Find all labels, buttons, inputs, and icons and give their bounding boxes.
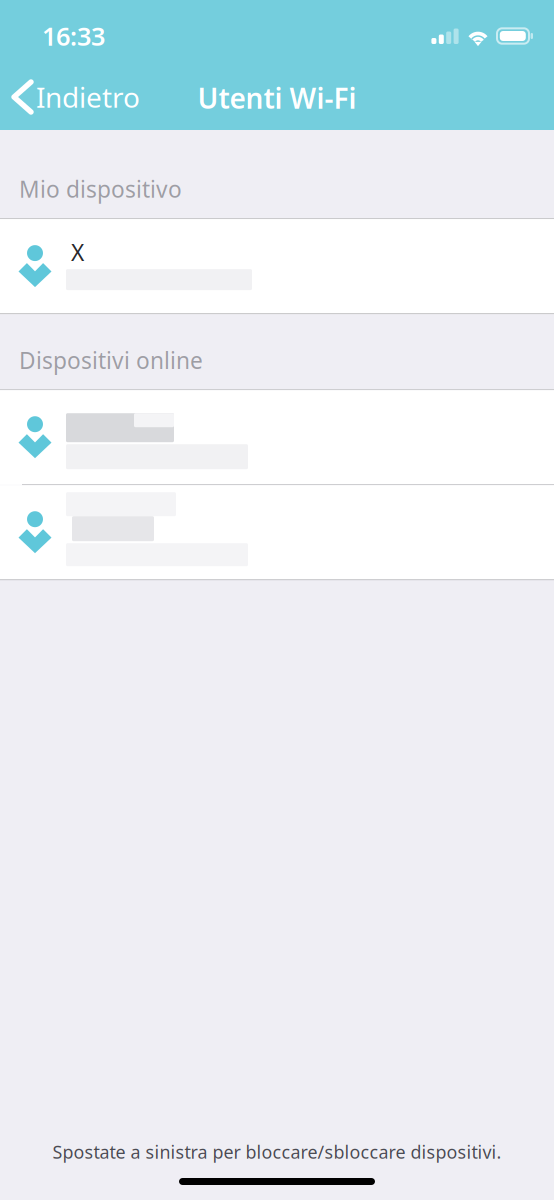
staticText: Spostate a sinistra per bloccare/sblocca… bbox=[52, 1140, 501, 1164]
staticText: Dispositivi online bbox=[19, 345, 203, 375]
button[interactable]: Indietro bbox=[0, 58, 152, 130]
staticText: Indietro bbox=[36, 78, 140, 116]
button[interactable] bbox=[0, 390, 554, 484]
staticText: Utenti Wi-Fi bbox=[197, 79, 356, 117]
staticText: Mio dispositivo bbox=[19, 174, 182, 204]
button[interactable]: X bbox=[0, 219, 554, 313]
staticText: 16:33 bbox=[42, 19, 105, 53]
staticText: X bbox=[71, 237, 84, 267]
button[interactable] bbox=[0, 485, 554, 579]
